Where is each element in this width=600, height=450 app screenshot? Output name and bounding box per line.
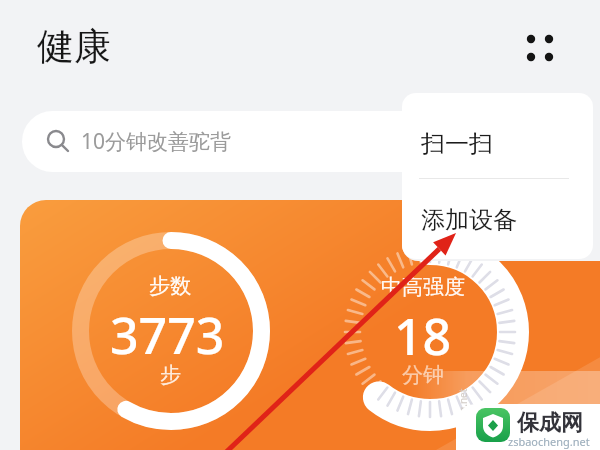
staticText: 保成网 [517,409,583,437]
staticText: 步数 [149,273,191,299]
staticText: 18 [394,302,452,362]
staticText: 10分钟改善驼背 [81,127,232,156]
button[interactable]: 10分钟改善驼背 [22,111,578,172]
button[interactable]: 扫一扫 [402,93,593,179]
staticText: 扫一扫 [421,129,493,159]
staticText: 3773 [110,301,225,361]
staticText: zsbaocheng.net [456,388,470,450]
staticText: zsbaocheng.net [508,434,590,449]
staticText: 分钟 [402,362,444,388]
button[interactable] [517,25,563,71]
staticText: 中高强度 [381,274,465,300]
staticText: 步 [160,362,181,388]
button[interactable]: 添加设备 [402,179,593,259]
staticText: 添加设备 [421,205,517,235]
staticText: 健康 [37,23,111,70]
